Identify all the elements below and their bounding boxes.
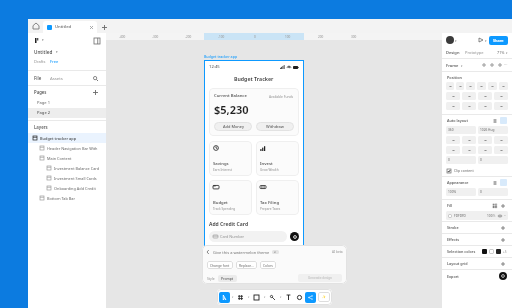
button[interactable]: 0 <box>478 156 508 164</box>
button[interactable]: Property <box>446 146 460 154</box>
button[interactable]: Property <box>494 136 508 144</box>
button[interactable]: Property <box>456 82 464 90</box>
button[interactable]: Main Content <box>28 153 106 163</box>
button[interactable]: Export <box>447 270 507 282</box>
button[interactable]: Prompt <box>218 275 237 282</box>
button[interactable]: Appearance option <box>491 179 498 186</box>
staticText: 300 <box>351 35 357 39</box>
button[interactable]: Colors <box>260 261 276 269</box>
button[interactable]: Give this a watermelon theme <box>206 245 343 259</box>
button[interactable]: Page 1 <box>28 98 106 108</box>
button[interactable]: Change font <box>207 261 233 269</box>
staticText: FDFDFD <box>454 214 466 218</box>
button[interactable]: Main menu <box>33 36 42 45</box>
button[interactable]: Bottom Tab Bar <box>28 193 106 203</box>
staticText: ▾ <box>264 296 266 299</box>
button[interactable]: Auto layout option <box>491 117 498 124</box>
button[interactable]: Property <box>477 82 486 90</box>
button[interactable]: Card Number <box>209 231 287 242</box>
button[interactable]: Search <box>91 74 100 83</box>
button[interactable]: Generate design <box>298 274 342 282</box>
button[interactable]: 0 <box>478 188 508 196</box>
button[interactable]: Property <box>478 102 492 110</box>
button[interactable]: Add Money <box>214 122 252 131</box>
button[interactable]: Property <box>494 102 508 110</box>
button[interactable]: Untitled <box>43 21 97 33</box>
button[interactable]: Property <box>462 92 476 100</box>
staticText: $5,230 <box>214 102 249 117</box>
button[interactable]: Investment Small Cards Grid <box>28 173 106 183</box>
button[interactable]: Property <box>488 82 497 90</box>
button[interactable]: Header Navigation Bar With Title <box>28 143 106 153</box>
button[interactable]: Account <box>446 36 454 44</box>
button[interactable]: Add page <box>91 88 100 97</box>
button[interactable]: Property <box>478 92 492 100</box>
button[interactable]: Frame <box>446 63 459 68</box>
button[interactable]: Toggle panel <box>92 36 101 45</box>
button[interactable]: Budget <box>209 180 252 215</box>
staticText: Bottom Tab Bar <box>47 196 76 201</box>
button[interactable]: 100% <box>446 188 476 196</box>
button[interactable]: Prototype <box>465 50 484 55</box>
button[interactable]: Tax Filing <box>256 180 299 215</box>
button[interactable]: Add Stroke <box>499 224 507 232</box>
button[interactable]: Investment Balance Card <box>28 163 106 173</box>
button[interactable]: Share <box>489 36 508 45</box>
button[interactable]: Actions <box>305 292 316 303</box>
button[interactable]: Property <box>446 82 454 90</box>
button[interactable]: Replace... <box>236 261 257 269</box>
button[interactable]: Property <box>462 102 476 110</box>
button[interactable]: Property <box>478 136 492 144</box>
button[interactable]: Property <box>478 146 492 154</box>
staticText: Prepare Taxes <box>260 207 281 211</box>
button[interactable]: Free <box>50 59 59 64</box>
button[interactable]: Withdraw <box>256 122 294 131</box>
button[interactable]: Close tab <box>87 23 95 31</box>
button[interactable]: Add Layout grid <box>499 260 507 268</box>
button[interactable]: Onboarding Add Credit Card <box>28 183 106 193</box>
button[interactable]: Pen tool <box>267 292 278 303</box>
button[interactable]: Add Fill <box>499 202 507 210</box>
button[interactable]: Property <box>462 146 476 154</box>
button[interactable]: Shape tool <box>251 292 262 303</box>
button[interactable]: 0 <box>446 156 476 164</box>
button[interactable]: Move tool <box>219 292 230 303</box>
button[interactable]: FDFDFD <box>446 211 508 220</box>
button[interactable]: Frame tool <box>235 292 246 303</box>
button[interactable]: 360 <box>446 126 476 134</box>
button[interactable]: Property <box>446 92 460 100</box>
button[interactable]: Property <box>446 102 460 110</box>
button[interactable]: Invest <box>256 141 299 176</box>
button[interactable]: New tab <box>97 21 111 33</box>
button[interactable]: Design <box>446 50 460 55</box>
button[interactable]: Text tool <box>283 292 294 303</box>
button[interactable]: Page 2 <box>28 108 106 118</box>
button[interactable]: Property <box>462 136 476 144</box>
button[interactable]: File <box>34 75 42 81</box>
button[interactable]: Present <box>477 36 485 44</box>
button[interactable]: Add Effects <box>499 236 507 244</box>
button[interactable]: Comment <box>294 292 305 303</box>
button[interactable]: Selection colors <box>447 246 507 257</box>
button[interactable]: Clip content <box>447 166 512 175</box>
button[interactable]: Budget tracker app <box>28 133 106 143</box>
button[interactable]: Property <box>499 82 508 90</box>
button[interactable]: Property <box>446 136 460 144</box>
button[interactable]: Savings <box>209 141 252 176</box>
button[interactable]: Property <box>494 146 508 154</box>
button[interactable]: Add card <box>290 232 299 241</box>
button[interactable]: Frame action <box>496 61 504 69</box>
button[interactable]: 1026 Hug <box>478 126 508 134</box>
button[interactable]: Assets <box>50 75 63 81</box>
staticText: 0 <box>448 158 450 162</box>
button[interactable]: Property <box>466 82 475 90</box>
button[interactable]: Current Balance <box>209 88 299 136</box>
button[interactable]: Home <box>28 19 43 33</box>
button[interactable]: Fill styles <box>491 202 498 209</box>
button[interactable]: Frame action <box>480 61 488 69</box>
button[interactable]: Frame action <box>488 61 496 69</box>
button[interactable]: Property <box>494 92 508 100</box>
button[interactable]: Plugins <box>318 292 330 302</box>
